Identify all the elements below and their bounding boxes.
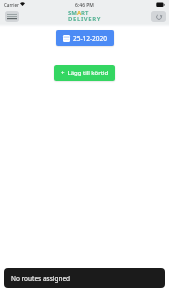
button[interactable]: Refresh — [151, 11, 166, 22]
button[interactable]: 25-12-2020 — [56, 30, 114, 46]
button[interactable]: + Lägg till körtid — [54, 65, 115, 81]
staticText: + Lägg till körtid — [61, 69, 109, 77]
staticText: Carrier — [4, 2, 19, 8]
staticText: 25-12-2020 — [73, 34, 107, 43]
button[interactable]: Menu — [5, 11, 19, 22]
button[interactable]: No routes assigned — [4, 268, 165, 288]
staticText: SMART — [68, 9, 89, 17]
staticText: No routes assigned — [11, 274, 71, 283]
staticText: DELIVERY — [68, 15, 102, 23]
staticText: 6:46 PM — [0, 2, 169, 9]
